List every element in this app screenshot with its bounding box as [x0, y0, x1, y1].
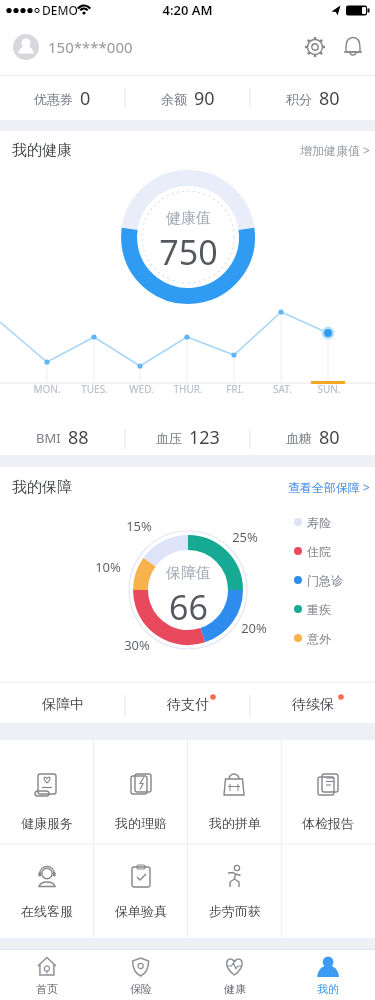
- staticText: 4:20 AM: [162, 1, 213, 19]
- staticText: 保单验真: [115, 903, 167, 919]
- staticText: 我的: [317, 982, 339, 996]
- button[interactable]: 健康: [188, 949, 282, 1000]
- button[interactable]: 积分: [250, 76, 375, 120]
- button[interactable]: 查看全部保障 >: [265, 473, 370, 501]
- staticText: 待支付: [167, 696, 209, 714]
- button[interactable]: 健康服务: [0, 740, 94, 844]
- staticText: 寿险: [307, 515, 331, 530]
- staticText: 积分: [286, 91, 312, 107]
- staticText: 90: [194, 86, 215, 111]
- button[interactable]: [0, 27, 140, 67]
- staticText: 步劳而获: [209, 903, 261, 919]
- staticText: FRI.: [226, 382, 244, 396]
- staticText: 25%: [232, 528, 258, 546]
- staticText: 80: [319, 86, 340, 111]
- staticText: 健康服务: [21, 815, 73, 831]
- staticText: 重疾: [307, 602, 331, 617]
- button[interactable]: 我的理赔: [94, 740, 188, 844]
- staticText: 体检报告: [302, 815, 354, 831]
- staticText: 查看全部保障 >: [288, 479, 370, 495]
- staticText: 我的理赔: [115, 815, 167, 831]
- staticText: 66: [169, 584, 208, 628]
- button[interactable]: 待支付: [125, 686, 250, 723]
- staticText: 30%: [124, 636, 150, 654]
- button[interactable]: 我的: [281, 949, 375, 1000]
- staticText: 待续保: [292, 696, 334, 714]
- staticText: 保险: [130, 982, 152, 996]
- staticText: BMI: [36, 429, 61, 447]
- button[interactable]: 待续保: [250, 686, 375, 723]
- staticText: 80: [319, 425, 340, 450]
- staticText: 血糖: [286, 430, 312, 446]
- staticText: 保障中: [42, 696, 84, 714]
- button[interactable]: 保单验真: [94, 844, 188, 938]
- staticText: 住院: [307, 544, 331, 559]
- staticText: 我的健康: [12, 141, 72, 160]
- staticText: 我的保障: [12, 478, 72, 497]
- button[interactable]: 保险: [94, 949, 188, 1000]
- staticText: 增加健康值 >: [300, 142, 370, 158]
- staticText: 150****000: [48, 37, 133, 57]
- button[interactable]: 血压: [125, 419, 250, 455]
- staticText: 我的拼单: [209, 815, 261, 831]
- button[interactable]: 在线客服: [0, 844, 94, 938]
- staticText: 123: [189, 425, 220, 450]
- staticText: TUES.: [81, 382, 108, 396]
- staticText: 保障值: [166, 564, 211, 583]
- button[interactable]: 首页: [0, 949, 94, 1000]
- staticText: 在线客服: [21, 903, 73, 919]
- button[interactable]: BMI: [0, 419, 125, 455]
- staticText: SUN.: [317, 382, 341, 396]
- staticText: 20%: [241, 619, 267, 637]
- staticText: 88: [68, 425, 89, 450]
- staticText: MON.: [33, 382, 61, 396]
- button[interactable]: 血糖: [250, 419, 375, 455]
- button[interactable]: 余额: [125, 76, 250, 120]
- staticText: 优惠券: [34, 91, 73, 107]
- staticText: SAT.: [273, 382, 292, 396]
- staticText: 门急诊: [307, 573, 343, 588]
- button[interactable]: 保障中: [0, 686, 125, 723]
- staticText: 健康: [224, 982, 246, 996]
- staticText: 血压: [156, 430, 182, 446]
- staticText: 15%: [126, 517, 152, 535]
- button[interactable]: 优惠券: [0, 76, 125, 120]
- button[interactable]: 增加健康值 >: [280, 136, 370, 164]
- staticText: DEMO: [42, 2, 78, 18]
- staticText: 余额: [161, 91, 187, 107]
- button[interactable]: 步劳而获: [188, 844, 282, 938]
- staticText: 0: [80, 86, 91, 111]
- staticText: 健康值: [166, 209, 211, 228]
- staticText: THUR.: [173, 382, 203, 396]
- staticText: 750: [159, 229, 218, 273]
- staticText: 首页: [36, 982, 58, 996]
- button[interactable]: 我的拼单: [188, 740, 282, 844]
- staticText: WED.: [129, 382, 154, 396]
- staticText: 意外: [307, 631, 331, 646]
- staticText: 10%: [95, 558, 121, 576]
- button[interactable]: 体检报告: [281, 740, 375, 844]
